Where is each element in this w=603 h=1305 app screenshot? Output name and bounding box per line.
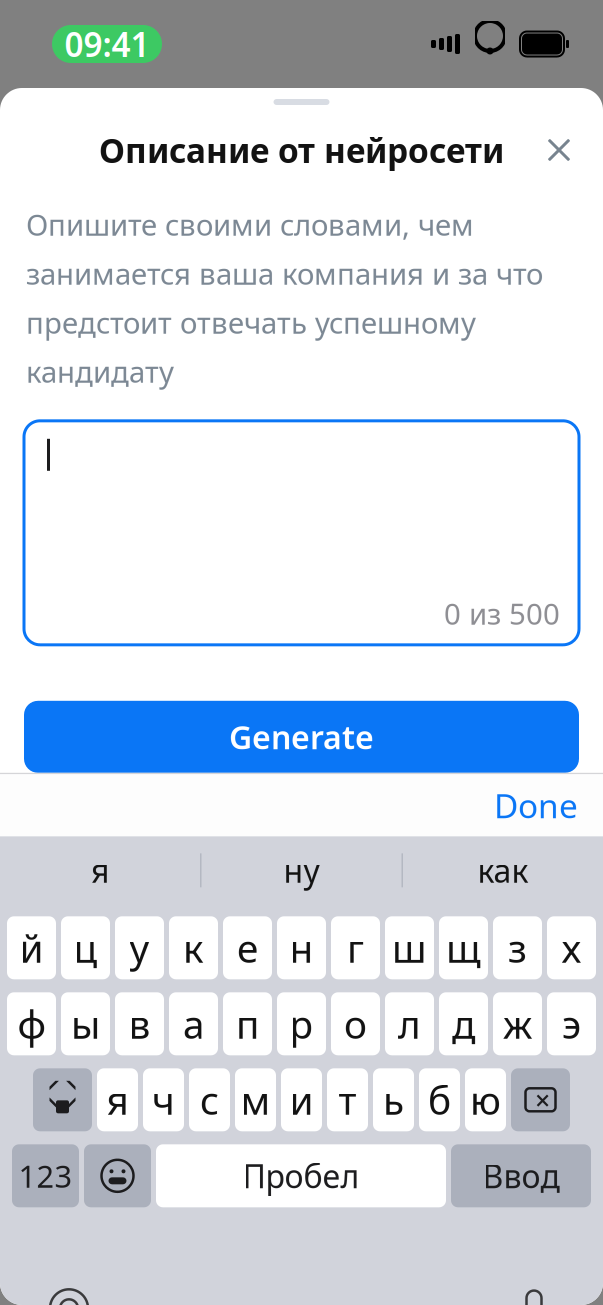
button[interactable]: а — [169, 992, 218, 1055]
staticText: г — [347, 922, 364, 973]
button[interactable]: ы — [61, 992, 110, 1055]
button[interactable]: Ввод — [451, 1144, 591, 1207]
staticText: 0 из 500 — [444, 594, 560, 633]
button[interactable]: м — [235, 1068, 276, 1131]
button[interactable]: ь — [373, 1068, 414, 1131]
button[interactable]: я — [97, 1068, 138, 1131]
button[interactable]: н — [277, 916, 326, 979]
button[interactable]: ц — [61, 916, 110, 979]
staticText: у — [129, 922, 149, 973]
button[interactable]: з — [493, 916, 542, 979]
button[interactable]: к — [169, 916, 218, 979]
staticText: т — [338, 1074, 356, 1125]
button[interactable]: х — [547, 916, 596, 979]
staticText: 123 — [18, 1155, 72, 1196]
button[interactable]: Generate — [24, 701, 579, 773]
staticText: н — [289, 922, 313, 973]
staticText: а — [183, 998, 204, 1049]
button[interactable]: э — [547, 992, 596, 1055]
staticText: ц — [73, 922, 97, 973]
staticText: ч — [152, 1074, 175, 1125]
button[interactable]: в — [115, 992, 164, 1055]
button[interactable]: и — [281, 1068, 322, 1131]
button[interactable]: ш — [385, 916, 434, 979]
button[interactable]: б — [419, 1068, 460, 1131]
staticText: ж — [503, 998, 532, 1049]
staticText: е — [237, 922, 258, 973]
button[interactable]: Emoji — [84, 1144, 151, 1207]
staticText: х — [561, 922, 581, 973]
staticText: р — [289, 998, 313, 1049]
button[interactable]: т — [327, 1068, 368, 1131]
button[interactable]: е — [223, 916, 272, 979]
button[interactable]: п — [223, 992, 272, 1055]
button[interactable]: г — [331, 916, 380, 979]
staticText: з — [508, 922, 527, 973]
staticText: л — [398, 998, 421, 1049]
button[interactable]: Shift — [33, 1068, 92, 1131]
staticText: и — [289, 1074, 313, 1125]
button[interactable]: Done — [482, 775, 590, 835]
button[interactable]: 123 — [12, 1144, 79, 1207]
button[interactable]: с — [189, 1068, 230, 1131]
staticText: Опишите своими словами, чем занимается в… — [26, 205, 543, 391]
staticText: ь — [383, 1074, 404, 1125]
staticText: как — [477, 849, 528, 892]
button[interactable]: л — [385, 992, 434, 1055]
staticText: о — [344, 998, 367, 1049]
staticText: в — [128, 998, 150, 1049]
staticText: ю — [470, 1074, 501, 1125]
staticText: щ — [446, 922, 481, 973]
button[interactable]: р — [277, 992, 326, 1055]
staticText: д — [452, 998, 475, 1049]
staticText: с — [200, 1074, 219, 1125]
staticText: я — [91, 849, 109, 892]
staticText: Generate — [229, 716, 374, 758]
button[interactable]: у — [115, 916, 164, 979]
button[interactable]: Пробел — [156, 1144, 446, 1207]
staticText: × — [535, 1082, 550, 1117]
button[interactable]: Change keyboard language — [42, 1281, 96, 1305]
button[interactable]: ч — [143, 1068, 184, 1131]
button[interactable]: о — [331, 992, 380, 1055]
staticText: ы — [71, 998, 100, 1049]
button[interactable]: ж — [493, 992, 542, 1055]
button[interactable]: 0 из 500 — [24, 421, 579, 645]
staticText: Пробел — [242, 1155, 359, 1197]
button[interactable]: ю — [465, 1068, 506, 1131]
staticText: 09:41 — [64, 22, 149, 66]
button[interactable]: Delete — [511, 1068, 570, 1131]
staticText: п — [236, 998, 259, 1049]
staticText: ф — [17, 998, 45, 1049]
staticText: э — [562, 998, 581, 1049]
button[interactable]: ф — [7, 992, 56, 1055]
staticText: ш — [392, 922, 427, 973]
button[interactable]: д — [439, 992, 488, 1055]
staticText: я — [106, 1074, 128, 1125]
staticText: ну — [283, 849, 319, 892]
staticText: б — [428, 1074, 451, 1125]
staticText: Done — [494, 783, 578, 827]
staticText: м — [240, 1074, 270, 1125]
staticText: й — [19, 922, 43, 973]
button[interactable]: Close — [533, 124, 585, 176]
staticText: Ввод — [482, 1155, 559, 1197]
staticText: к — [183, 922, 204, 973]
button[interactable]: щ — [439, 916, 488, 979]
button[interactable]: й — [7, 916, 56, 979]
staticText: Описание от нейросети — [99, 128, 504, 172]
button[interactable]: Dictate — [507, 1281, 561, 1305]
